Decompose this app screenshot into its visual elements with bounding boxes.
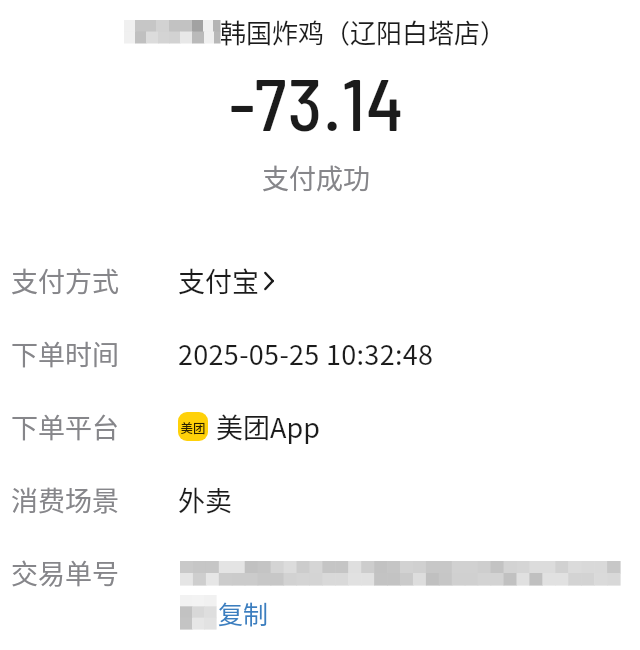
staticText: 韩国炸鸡（辽阳白塔店）: [220, 13, 507, 49]
staticText: 支付宝: [178, 261, 259, 300]
staticText: 下单时间: [11, 334, 119, 373]
button[interactable]: 复制: [180, 595, 269, 629]
staticText: 消费场景: [11, 480, 119, 519]
staticText: 支付方式: [11, 261, 119, 300]
staticText: 美团App: [216, 407, 320, 446]
staticText: 支付成功: [262, 158, 370, 196]
other: 查看支付方式: [263, 268, 276, 294]
staticText: 美团: [180, 418, 206, 436]
staticText: 下单平台: [11, 407, 119, 446]
staticText: 复制: [218, 595, 269, 629]
staticText: -73.14: [229, 58, 405, 134]
button[interactable]: 支付方式: [0, 261, 640, 334]
other: 美团: [178, 412, 208, 441]
staticText: 2025-05-25 10:32:48: [178, 334, 434, 373]
staticText: 交易单号: [11, 553, 119, 592]
staticText: 外卖: [178, 480, 232, 519]
